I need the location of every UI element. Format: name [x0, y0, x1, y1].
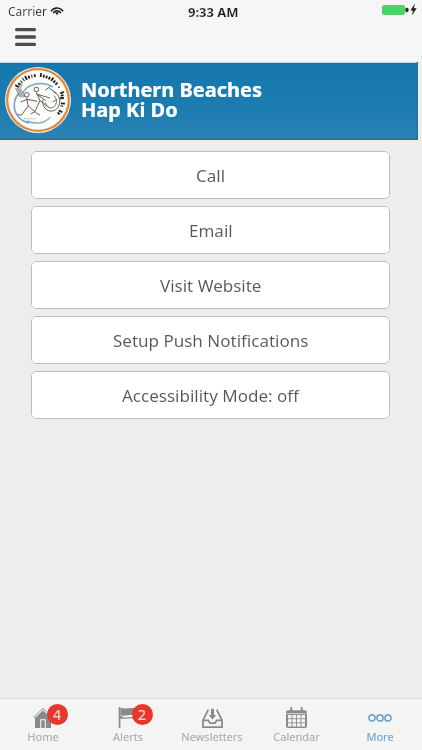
staticText: Accessibility Mode: off — [122, 384, 299, 407]
staticText: Home — [27, 729, 59, 744]
button[interactable]: Visit Website — [31, 261, 390, 309]
staticText: Call — [196, 164, 226, 187]
button[interactable]: Setup Push Notifications — [31, 316, 390, 364]
button[interactable]: Email — [31, 206, 390, 254]
staticText: More — [366, 729, 394, 744]
button[interactable]: Call — [31, 151, 390, 199]
staticText: 4 — [53, 705, 62, 724]
button[interactable]: 2 — [85, 698, 170, 750]
staticText: 2 — [138, 705, 147, 724]
staticText: 9:33 AM — [188, 3, 239, 21]
staticText: Northern Beaches — [81, 76, 262, 103]
button[interactable]: 4 — [0, 698, 85, 750]
staticText: Setup Push Notifications — [113, 329, 309, 352]
button[interactable]: Newsletters — [170, 698, 254, 750]
button[interactable]: Calendar — [254, 698, 338, 750]
button[interactable]: Accessibility Mode: off — [31, 371, 390, 419]
staticText: Alerts — [113, 729, 143, 744]
staticText: Hap Ki Do — [81, 96, 178, 123]
staticText: Visit Website — [160, 274, 262, 297]
staticText: Email — [189, 219, 233, 242]
staticText: Newsletters — [181, 729, 243, 744]
staticText: Carrier — [8, 3, 48, 19]
button[interactable]: Menu — [4, 21, 47, 55]
button[interactable]: More — [338, 698, 422, 750]
staticText: Calendar — [273, 729, 320, 744]
